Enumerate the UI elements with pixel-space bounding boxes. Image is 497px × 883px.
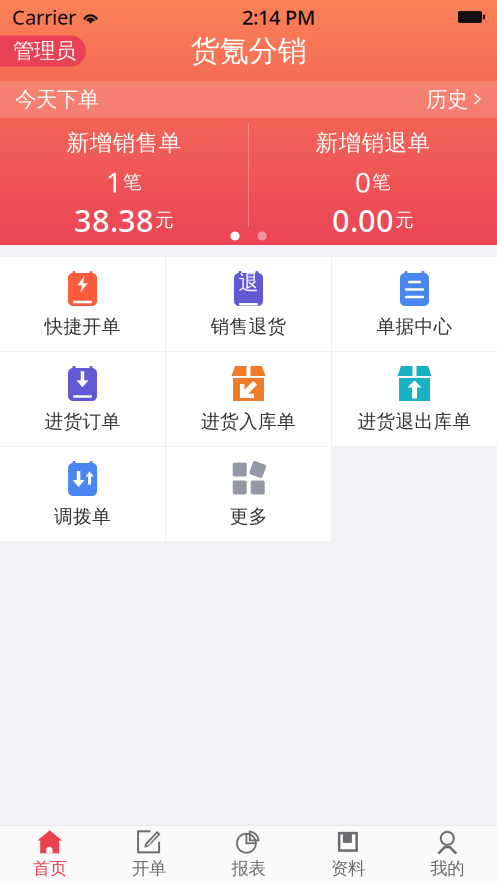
staticText: 我的 xyxy=(430,858,464,879)
button[interactable]: 单据中心 xyxy=(332,257,497,351)
button[interactable]: 我的 xyxy=(398,825,497,883)
button[interactable]: 资料 xyxy=(298,825,398,883)
button[interactable]: 管理员 xyxy=(0,35,86,66)
button[interactable]: 首页 xyxy=(0,825,99,883)
staticText: 1 xyxy=(106,163,122,201)
button[interactable]: 进货入库单 xyxy=(166,352,331,446)
button[interactable]: 进货退出库单 xyxy=(332,352,497,446)
staticText: 0 xyxy=(355,163,371,201)
staticText: 报表 xyxy=(231,858,265,879)
staticText: 笔 xyxy=(372,170,391,193)
staticText: 首页 xyxy=(33,858,67,879)
button[interactable]: 调拨单 xyxy=(0,447,165,541)
button[interactable]: 开单 xyxy=(99,825,199,883)
staticText: 新增销退单 xyxy=(315,129,430,157)
staticText: 管理员 xyxy=(13,38,76,64)
staticText: 38.38 xyxy=(74,200,154,240)
staticText: 资料 xyxy=(331,858,365,879)
button[interactable]: 报表 xyxy=(199,825,298,883)
staticText: 更多 xyxy=(230,505,268,528)
button[interactable]: 更多 xyxy=(166,447,331,541)
staticText: 元 xyxy=(395,208,414,231)
staticText: 历史 xyxy=(426,86,468,113)
staticText: 退 xyxy=(238,270,258,295)
staticText: 进货退出库单 xyxy=(357,410,471,433)
staticText: Carrier xyxy=(12,4,76,30)
staticText: 进货订单 xyxy=(44,410,120,433)
staticText: 元 xyxy=(155,208,174,231)
staticText: 单据中心 xyxy=(376,315,452,338)
staticText: 调拨单 xyxy=(54,505,111,528)
staticText: 0.00 xyxy=(332,200,394,240)
staticText: 新增销售单 xyxy=(66,129,181,157)
staticText: 销售退货 xyxy=(210,315,286,338)
staticText: 笔 xyxy=(123,170,142,193)
button[interactable]: 进货订单 xyxy=(0,352,165,446)
staticText: 今天下单 xyxy=(15,86,99,113)
staticText: 货氪分销 xyxy=(190,33,306,69)
staticText: 快捷开单 xyxy=(44,315,120,338)
button[interactable]: 历史 xyxy=(426,86,482,113)
button[interactable]: 退 xyxy=(166,257,331,351)
staticText: 开单 xyxy=(132,858,166,879)
staticText: 进货入库单 xyxy=(201,410,296,433)
button[interactable]: 快捷开单 xyxy=(0,257,165,351)
staticText: 2:14 PM xyxy=(242,4,315,30)
